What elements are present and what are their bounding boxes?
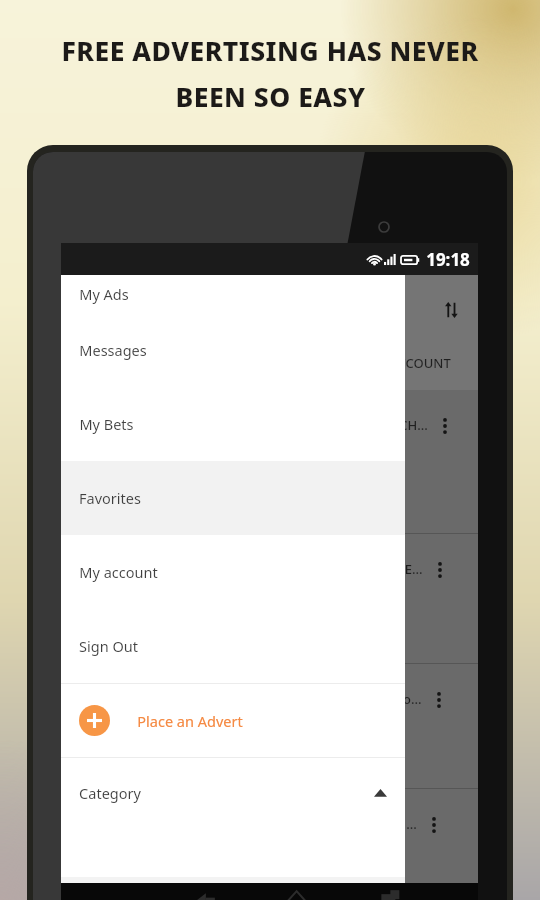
- staticText: My Bets: [79, 414, 134, 434]
- staticText: FREE ADVERTISING HAS NEVER: [61, 33, 479, 69]
- staticText: BEEN SO EASY: [175, 79, 366, 115]
- button[interactable]: More options: [430, 690, 448, 710]
- staticText: 19:18: [426, 248, 470, 271]
- button[interactable]: More options: [431, 560, 449, 580]
- button[interactable]: Category: [61, 758, 405, 828]
- button[interactable]: Favorites: [61, 461, 405, 535]
- staticText: Favorites: [79, 488, 141, 508]
- staticText: Messages: [79, 340, 147, 360]
- button[interactable]: Place an Advert: [61, 684, 405, 757]
- staticText: Eco...: [389, 690, 422, 708]
- button[interactable]: Sort: [437, 296, 465, 324]
- button[interactable]: OCH...: [61, 390, 478, 533]
- button[interactable]: More options: [425, 815, 443, 835]
- staticText: Sign Out: [79, 636, 138, 656]
- button[interactable]: ERE...: [61, 534, 478, 663]
- staticText: Place an Advert: [137, 711, 243, 731]
- button[interactable]: More options: [436, 416, 454, 436]
- button[interactable]: Messages: [61, 313, 405, 387]
- button[interactable]: Eco...: [61, 664, 478, 788]
- staticText: ERE...: [389, 560, 423, 578]
- staticText: OCH...: [389, 416, 428, 434]
- staticText: ACCOUNT: [389, 354, 451, 372]
- staticText: , N...: [389, 815, 417, 833]
- staticText: My Ads: [79, 284, 129, 304]
- button[interactable]: My account: [61, 535, 405, 609]
- staticText: My account: [79, 562, 158, 582]
- button[interactable]: , N...: [61, 789, 478, 883]
- button[interactable]: My Bets: [61, 387, 405, 461]
- button[interactable]: My Ads: [61, 275, 405, 313]
- button[interactable]: Sign Out: [61, 609, 405, 683]
- staticText: Category: [79, 783, 141, 803]
